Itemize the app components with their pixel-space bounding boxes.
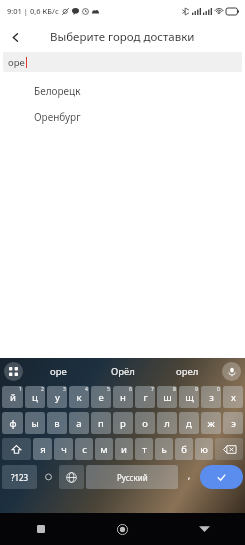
button[interactable]: л (157, 412, 177, 434)
staticText: ь (161, 443, 167, 456)
button[interactable]: Home (81, 513, 163, 545)
button[interactable]: орел (155, 358, 219, 384)
staticText: й (10, 391, 16, 404)
staticText: 2 (41, 386, 44, 393)
staticText: 5 (107, 386, 110, 393)
staticText: е (98, 391, 104, 404)
button[interactable]: ы (25, 412, 45, 434)
staticText: в (54, 417, 60, 430)
button[interactable]: е (91, 386, 111, 408)
button[interactable]: т (135, 438, 153, 460)
button[interactable]: б (175, 438, 193, 460)
staticText: л (164, 417, 170, 430)
staticText: р (120, 417, 126, 430)
button[interactable]: Белорецк (0, 78, 245, 104)
staticText: а (76, 417, 82, 430)
button[interactable]: Hide keyboard (163, 513, 245, 545)
button[interactable]: х (223, 386, 243, 408)
staticText: Орёл (111, 365, 135, 378)
button[interactable]: з (201, 386, 221, 408)
staticText: Белорецк (34, 84, 81, 98)
staticText: ф (9, 417, 17, 430)
button[interactable]: ц (25, 386, 45, 408)
staticText: г (143, 391, 148, 404)
button[interactable]: Русский (86, 465, 178, 489)
staticText: н (120, 391, 126, 404)
button[interactable]: о (135, 412, 155, 434)
staticText: ш (163, 391, 172, 404)
staticText: с (82, 443, 87, 456)
staticText: к (76, 391, 82, 404)
button[interactable]: Voice input (222, 362, 241, 381)
staticText: , (188, 470, 191, 481)
button[interactable]: ж (201, 412, 221, 434)
button[interactable]: Change language (59, 465, 84, 489)
button[interactable]: Enter (200, 465, 243, 489)
staticText: б (181, 443, 187, 456)
staticText: Русский (117, 472, 148, 483)
staticText: оре (50, 365, 67, 378)
button[interactable]: Comma (179, 465, 199, 489)
button[interactable]: Emoji (38, 465, 58, 489)
staticText: о (142, 417, 148, 430)
staticText: 8 (173, 386, 176, 393)
button[interactable]: у (47, 386, 67, 408)
staticText: 7 (151, 386, 154, 393)
button[interactable]: м (95, 438, 113, 460)
button[interactable]: Shift (2, 438, 31, 460)
button[interactable]: ь (155, 438, 173, 460)
staticText: оре (8, 56, 25, 69)
staticText: 9:01 | 0,6 КБ/с (7, 6, 59, 16)
button[interactable]: Орёл (91, 358, 155, 384)
staticText: ?123 (11, 472, 29, 483)
button[interactable]: к (69, 386, 89, 408)
staticText: з (209, 391, 214, 404)
staticText: 9 (195, 386, 198, 393)
button[interactable]: н (113, 386, 133, 408)
staticText: ю (200, 443, 208, 456)
staticText: я (40, 443, 46, 456)
staticText: т (142, 443, 147, 456)
staticText: 0 (217, 386, 220, 393)
staticText: щ (185, 391, 194, 404)
button[interactable]: Keyboard menu (4, 362, 23, 381)
staticText: 6 (129, 386, 132, 393)
button[interactable]: а (69, 412, 89, 434)
button[interactable]: д (179, 412, 199, 434)
button[interactable]: ф (2, 412, 23, 434)
button[interactable]: Recents (0, 513, 81, 545)
staticText: д (186, 417, 192, 430)
button[interactable]: э (223, 412, 243, 434)
staticText: ч (61, 443, 67, 456)
button[interactable]: р (113, 412, 133, 434)
staticText: 3 (63, 386, 66, 393)
button[interactable]: с (75, 438, 93, 460)
button[interactable]: оре (26, 358, 91, 384)
staticText: ж (207, 417, 215, 430)
button[interactable]: в (47, 412, 67, 434)
button[interactable]: г (135, 386, 155, 408)
button[interactable]: ю (195, 438, 213, 460)
button[interactable]: Back (0, 22, 30, 52)
staticText: п (98, 417, 104, 430)
staticText: ы (31, 417, 39, 430)
button[interactable]: й (2, 386, 23, 408)
button[interactable]: ч (54, 438, 73, 460)
button[interactable]: Backspace (215, 438, 243, 460)
button[interactable]: Оренбург (0, 104, 245, 130)
staticText: ц (32, 391, 38, 404)
staticText: Оренбург (34, 110, 81, 124)
staticText: 1 (19, 386, 22, 393)
button[interactable]: п (91, 412, 111, 434)
button[interactable]: оре (3, 52, 242, 72)
button[interactable]: я (33, 438, 52, 460)
staticText: 4 (85, 386, 88, 393)
button[interactable]: и (115, 438, 133, 460)
button[interactable]: щ (179, 386, 199, 408)
staticText: э (231, 417, 236, 430)
staticText: орел (176, 365, 199, 378)
staticText: Выберите город доставки (50, 29, 195, 45)
button[interactable]: ш (157, 386, 177, 408)
button[interactable]: ?123 (2, 465, 37, 489)
staticText: у (55, 391, 60, 404)
